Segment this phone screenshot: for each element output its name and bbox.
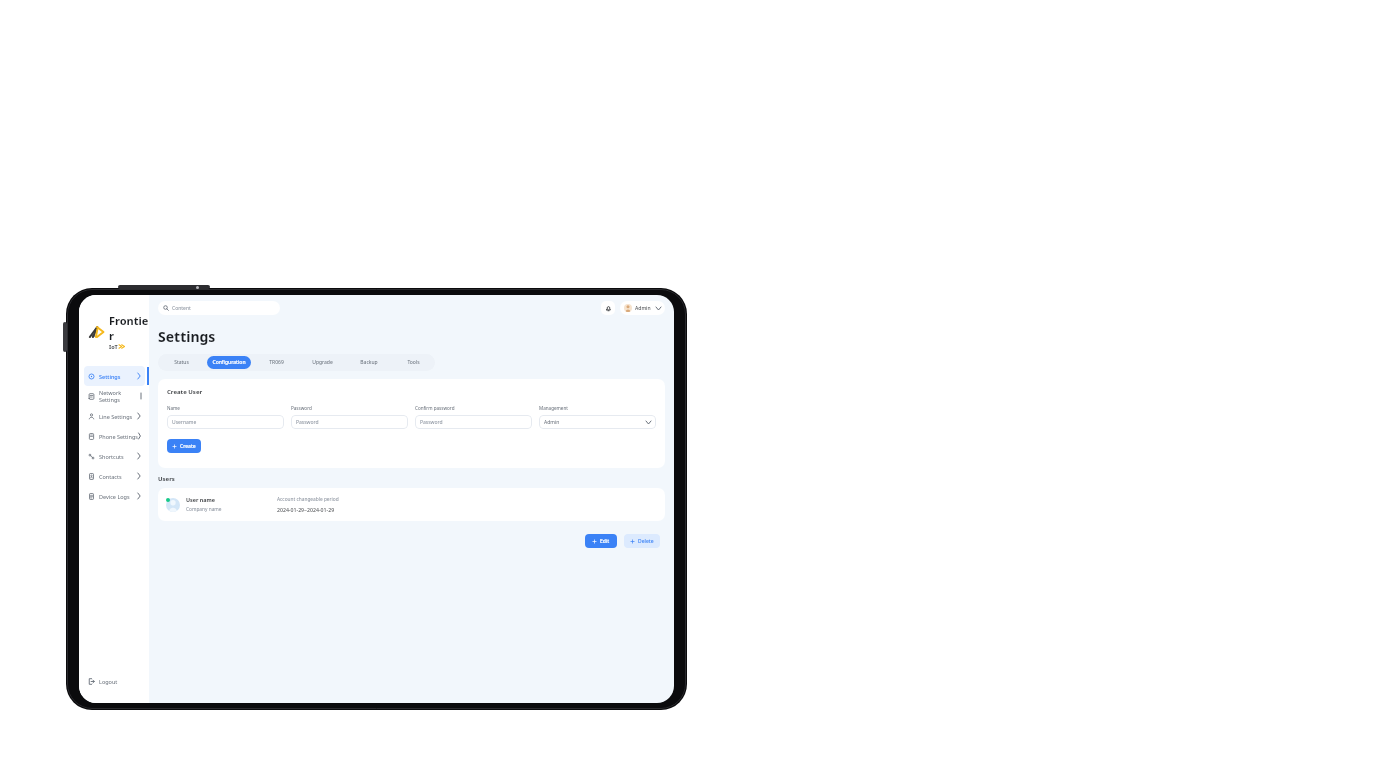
button[interactable]: Line Settings [79, 406, 149, 426]
button[interactable]: Delete [624, 534, 660, 548]
button[interactable]: Password [415, 415, 532, 429]
staticText: Tools [407, 359, 420, 366]
staticText: Backup [360, 359, 378, 366]
staticText: Delete [638, 538, 654, 545]
staticText: Contacts [99, 473, 122, 480]
button[interactable]: Create [167, 439, 201, 453]
staticText: Account changeable period [277, 496, 339, 503]
button[interactable]: Settings [79, 366, 149, 386]
staticText: Create [180, 443, 196, 450]
staticText: Upgrade [312, 359, 333, 366]
staticText: Settings [158, 327, 216, 346]
staticText: Status [174, 359, 189, 366]
button[interactable]: Admin [539, 415, 656, 429]
staticText: Name [167, 405, 180, 411]
staticText: Shortcuts [99, 453, 124, 460]
button[interactable]: TR069 [255, 356, 297, 369]
staticText: Admin [544, 419, 560, 426]
staticText: Device Logs [99, 493, 130, 500]
staticText: Admin [635, 305, 651, 312]
staticText: Username [172, 419, 197, 426]
staticText: Network Settings [99, 389, 141, 403]
button[interactable]: Status [160, 356, 203, 369]
staticText: IoT [109, 343, 118, 350]
staticText: Users [158, 475, 175, 483]
button[interactable]: Username [167, 415, 284, 429]
staticText: Configuration [212, 359, 246, 366]
staticText: User name [186, 496, 216, 503]
staticText: Edit [600, 538, 610, 545]
button[interactable]: Content [158, 301, 280, 315]
staticText: Company name [186, 506, 222, 513]
button[interactable]: Configuration [207, 356, 251, 369]
button[interactable]: Password [291, 415, 408, 429]
button[interactable]: Backup [348, 356, 389, 369]
button[interactable]: Upgrade [301, 356, 344, 369]
staticText: Confirm password [415, 405, 455, 411]
staticText: Password [296, 419, 319, 426]
button[interactable]: Edit [585, 534, 617, 548]
staticText: Frontier [109, 313, 149, 343]
button[interactable]: User name [158, 488, 665, 521]
button[interactable]: Network Settings [79, 386, 149, 406]
staticText: Create User [167, 388, 203, 396]
staticText: Password [291, 405, 312, 411]
button[interactable]: Device Logs [79, 486, 149, 506]
staticText: Management [539, 405, 568, 411]
button[interactable]: Logout [79, 671, 149, 691]
button[interactable]: Tools [393, 356, 433, 369]
staticText: Phone Settings [99, 433, 138, 440]
staticText: Line Settings [99, 413, 133, 420]
staticText: Content [172, 305, 191, 312]
staticText: Settings [99, 373, 121, 380]
button[interactable]: Phone Settings [79, 426, 149, 446]
staticText: Password [420, 419, 443, 426]
staticText: 2024-01-29~2024-01-29 [277, 506, 335, 513]
button[interactable]: Notifications [601, 301, 615, 315]
button[interactable]: Admin [620, 301, 665, 315]
staticText: TR069 [269, 359, 284, 366]
button[interactable]: Shortcuts [79, 446, 149, 466]
button[interactable]: Contacts [79, 466, 149, 486]
staticText: Logout [99, 678, 118, 685]
